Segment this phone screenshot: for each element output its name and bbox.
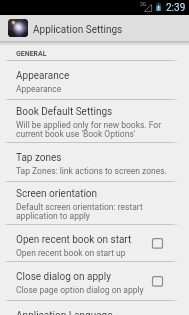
staticText: Open recent book on start up xyxy=(16,248,126,258)
button[interactable]: Open recent book on start xyxy=(0,225,189,261)
button[interactable]: Toggle Close dialog on apply xyxy=(151,275,164,288)
button[interactable]: Tap zones xyxy=(0,143,189,181)
staticText: Will be applied only for new books. For … xyxy=(16,120,174,139)
staticText: Book Default Settings xyxy=(16,106,113,118)
staticText: Appearance xyxy=(16,84,62,94)
button[interactable]: Book Default Settings xyxy=(0,100,189,142)
staticText: Tap Zones: link actions to screen zones. xyxy=(16,166,167,176)
staticText: Screen orientation xyxy=(16,188,98,200)
button[interactable]: Application Language xyxy=(0,301,189,315)
staticText: Appearance xyxy=(16,70,70,82)
staticText: 2:39 xyxy=(166,2,186,14)
button[interactable]: Close dialog on apply xyxy=(0,262,189,300)
button[interactable]: Screen orientation xyxy=(0,182,189,224)
staticText: GENERAL xyxy=(16,50,47,58)
staticText: Application Language xyxy=(16,310,113,315)
staticText: Tap zones xyxy=(16,152,62,164)
staticText: Default screen orientation: restart appl… xyxy=(16,202,174,221)
staticText: 3G xyxy=(140,1,147,7)
button[interactable]: Appearance xyxy=(0,61,189,99)
staticText: Close dialog on apply xyxy=(16,271,111,283)
button[interactable]: Toggle Open recent book on start xyxy=(151,237,164,250)
staticText: Open recent book on start xyxy=(16,234,132,246)
staticText: Application Settings xyxy=(33,24,123,36)
staticText: Close page option dialog on apply xyxy=(16,285,144,295)
